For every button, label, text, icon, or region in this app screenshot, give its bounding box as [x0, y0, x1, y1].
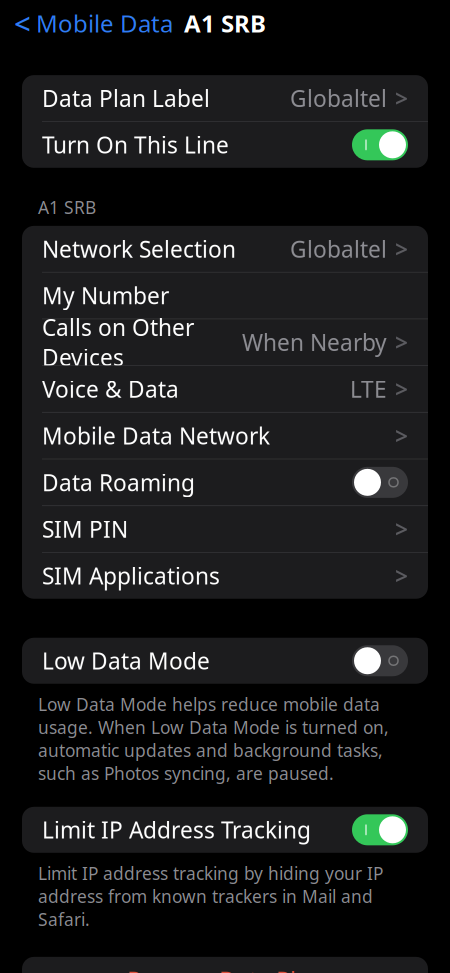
staticText: Voice & Data — [42, 374, 179, 404]
staticText: Mobile Data Network — [42, 421, 270, 451]
staticText: SIM Applications — [42, 561, 220, 591]
staticText: Globaltel — [290, 83, 387, 113]
button[interactable]: Voice & Data — [22, 366, 428, 412]
staticText: > — [395, 374, 408, 404]
button[interactable]: Data Plan Label — [22, 75, 428, 121]
button[interactable]: SIM Applications — [22, 553, 428, 599]
button[interactable]: Limit IP Address Tracking — [22, 807, 428, 853]
staticText: Globaltel — [290, 234, 387, 264]
staticText: A1 SRB — [184, 7, 266, 39]
staticText: < — [14, 4, 31, 43]
staticText: > — [395, 234, 408, 264]
staticText: Remove Data Plan — [127, 965, 323, 973]
button[interactable]: Network Selection — [22, 226, 428, 272]
staticText: Limit IP Address Tracking — [42, 815, 311, 845]
staticText: > — [395, 83, 408, 113]
staticText: Calls on Other Devices — [42, 312, 194, 372]
button[interactable]: Remove Data Plan — [0, 957, 450, 973]
staticText: SIM PIN — [42, 514, 128, 544]
staticText: > — [395, 421, 408, 451]
button[interactable]: Low Data Mode — [22, 638, 428, 684]
staticText: Data Plan Label — [42, 83, 210, 113]
staticText: > — [395, 514, 408, 544]
button[interactable]: Turn On This Line — [22, 122, 428, 168]
button[interactable]: < — [0, 0, 173, 49]
staticText: > — [395, 327, 408, 357]
staticText: Low Data Mode helps reduce mobile data u… — [38, 693, 389, 785]
staticText: LTE — [350, 374, 387, 404]
staticText: Low Data Mode — [42, 646, 210, 676]
staticText: Data Roaming — [42, 467, 195, 497]
staticText: My Number — [42, 280, 169, 311]
button[interactable]: Calls on Other Devices — [22, 319, 428, 365]
button[interactable]: SIM PIN — [22, 506, 428, 552]
staticText: Network Selection — [42, 234, 236, 264]
staticText: Mobile Data — [36, 7, 173, 39]
staticText: Turn On This Line — [42, 130, 229, 160]
button[interactable]: Data Roaming — [22, 459, 428, 505]
staticText: A1 SRB — [38, 196, 96, 219]
staticText: Limit IP address tracking by hiding your… — [38, 862, 383, 931]
staticText: > — [395, 561, 408, 591]
staticText: When Nearby — [242, 327, 387, 357]
button[interactable]: Mobile Data Network — [22, 413, 428, 459]
button[interactable]: My Number — [22, 272, 428, 318]
